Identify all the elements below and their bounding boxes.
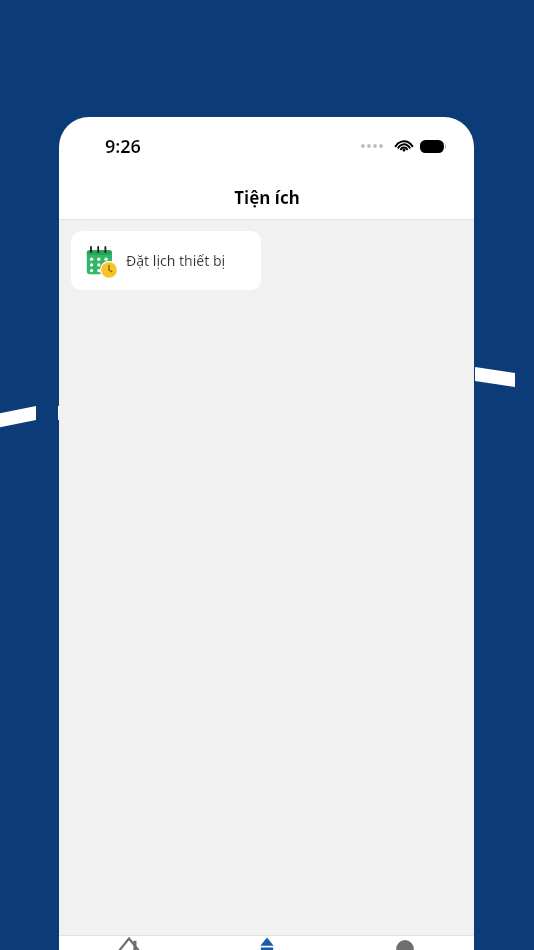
staticText: Tiện ích bbox=[234, 186, 300, 209]
button[interactable]: Tài khoản bbox=[336, 936, 474, 950]
button[interactable]: Home bbox=[59, 936, 198, 950]
button[interactable]: Đặt lịch thiết bị bbox=[71, 231, 261, 290]
staticText: 9:26 bbox=[105, 134, 141, 159]
button[interactable]: Tiện ích bbox=[198, 936, 336, 950]
staticText: Đặt lịch thiết bị bbox=[126, 251, 226, 270]
